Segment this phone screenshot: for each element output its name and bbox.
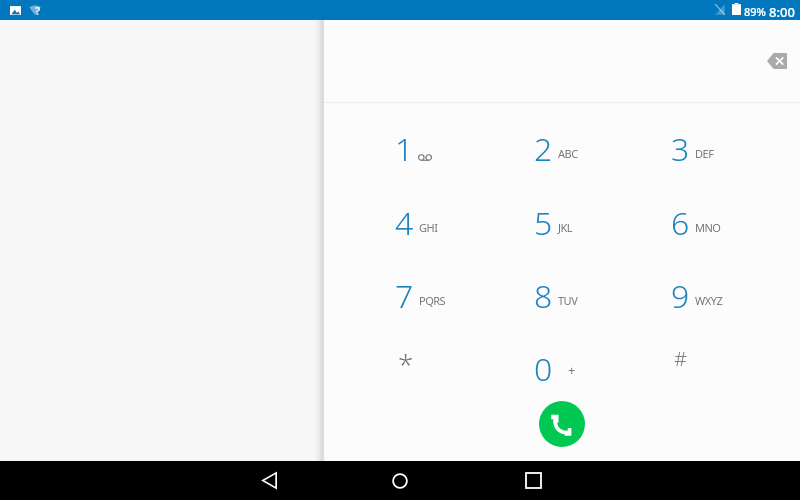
staticText: +	[568, 361, 575, 379]
button[interactable]: Dial 5	[474, 183, 612, 256]
button[interactable]: Recents	[505, 461, 561, 500]
button[interactable]: Call	[539, 401, 585, 447]
staticText: GHI	[419, 220, 438, 235]
staticText: 89%	[744, 4, 766, 19]
button[interactable]: Dial 9	[611, 256, 749, 329]
staticText: 1	[395, 127, 414, 171]
staticText: WXYZ	[695, 293, 723, 308]
button[interactable]: Dial #	[611, 329, 749, 402]
button[interactable]: Home	[372, 461, 428, 500]
staticText: ?	[35, 3, 41, 18]
staticText: JKL	[558, 220, 573, 235]
staticText: DEF	[695, 146, 714, 161]
button[interactable]: Dial 2	[474, 109, 612, 182]
button[interactable]: Dial 7	[335, 256, 473, 329]
staticText: 0	[534, 347, 553, 391]
button[interactable]: Dial *	[335, 329, 473, 402]
button[interactable]: Dial 1	[335, 109, 473, 182]
button[interactable]: Dial 4	[335, 183, 473, 256]
staticText: 6	[671, 201, 690, 245]
staticText: #	[674, 345, 687, 372]
staticText: 4	[395, 201, 414, 245]
staticText: 9	[671, 274, 690, 318]
staticText: *	[398, 345, 414, 383]
button[interactable]: Dial 6	[611, 183, 749, 256]
staticText: ABC	[558, 146, 578, 161]
staticText: 5	[534, 201, 553, 245]
staticText: 8	[534, 274, 553, 318]
staticText: PQRS	[419, 293, 446, 308]
staticText: MNO	[695, 220, 721, 235]
staticText: 2	[534, 127, 553, 171]
button[interactable]: Dial 8	[474, 256, 612, 329]
button[interactable]: Dial 0	[474, 329, 612, 402]
staticText: TUV	[558, 293, 578, 308]
button[interactable]: Back	[241, 461, 297, 500]
staticText: 7	[395, 274, 414, 318]
staticText: 8:00	[769, 3, 795, 21]
staticText: 3	[671, 127, 690, 171]
button[interactable]: Dial 3	[611, 109, 749, 182]
button[interactable]: Backspace	[761, 45, 793, 77]
